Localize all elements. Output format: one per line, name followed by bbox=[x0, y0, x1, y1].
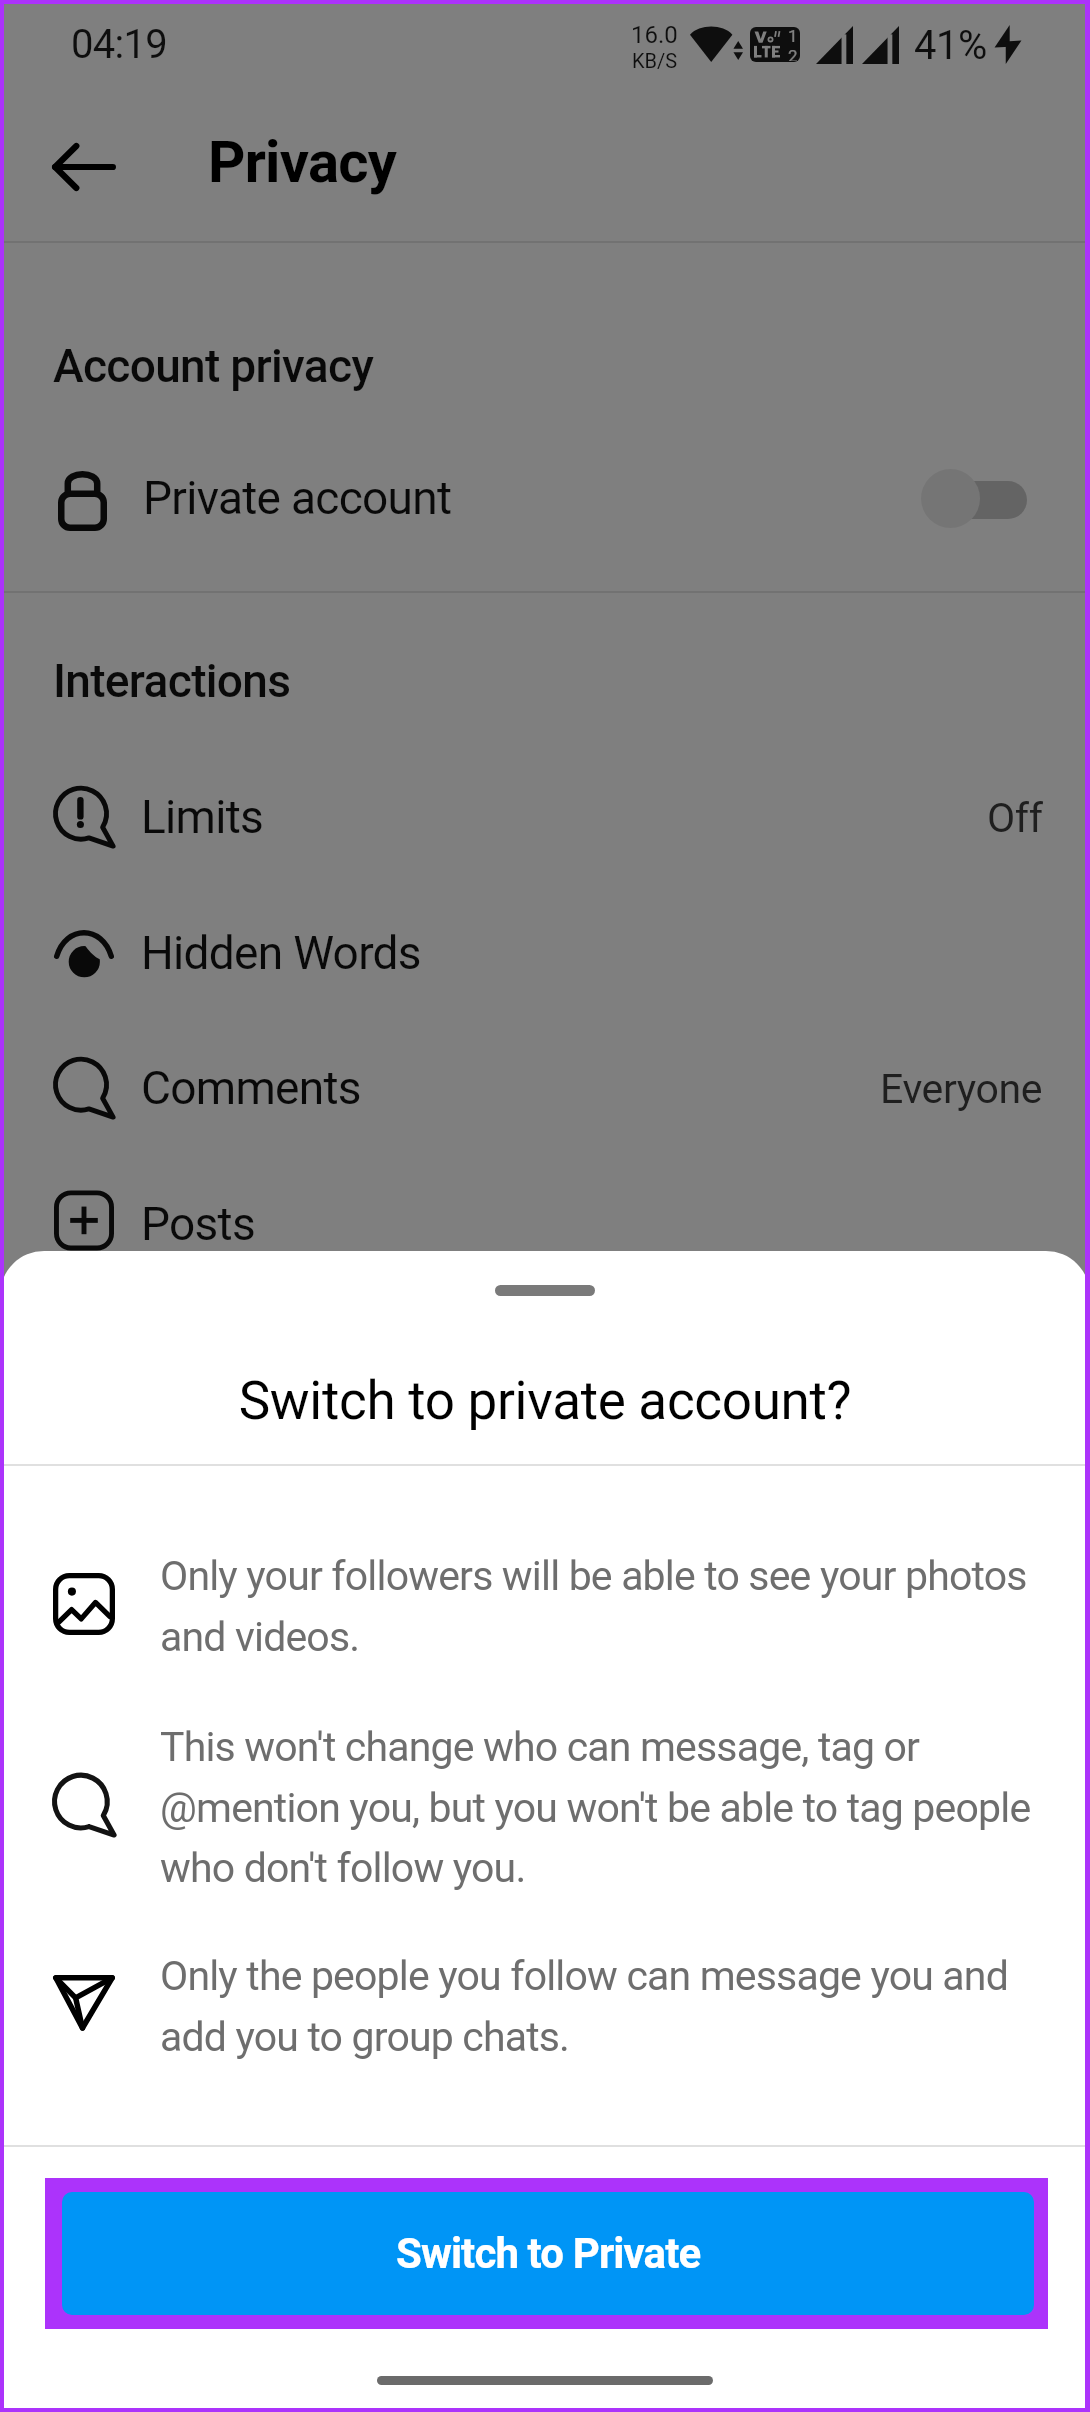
staticText: 16.0 bbox=[631, 21, 678, 49]
button[interactable]: Switch to Private bbox=[62, 2192, 1034, 2315]
staticText: Only the people you follow can message y… bbox=[160, 1952, 1008, 2061]
staticText: Comments bbox=[141, 1061, 361, 1115]
staticText: 2 bbox=[788, 46, 798, 61]
staticText: Posts bbox=[141, 1197, 255, 1251]
staticText: 1 bbox=[788, 27, 798, 46]
button[interactable]: Private account bbox=[0, 440, 1090, 562]
staticText: Interactions bbox=[53, 654, 291, 708]
staticText: 04:19 bbox=[71, 21, 168, 68]
staticText: Limits bbox=[141, 790, 264, 844]
staticText: Privacy bbox=[208, 128, 397, 196]
staticText: Hidden Words bbox=[141, 926, 421, 980]
staticText: Off bbox=[987, 794, 1043, 842]
staticText: Everyone bbox=[880, 1065, 1043, 1113]
button[interactable]: Hidden Words bbox=[0, 885, 1090, 1021]
button[interactable]: Private account toggle bbox=[921, 468, 1027, 528]
staticText: Account privacy bbox=[53, 339, 374, 393]
staticText: Switch to Private bbox=[396, 2229, 701, 2278]
staticText: Switch to private account? bbox=[0, 1370, 1090, 1432]
button[interactable]: Back bbox=[26, 109, 142, 225]
staticText: Private account bbox=[143, 471, 452, 525]
staticText: KB/S bbox=[632, 49, 678, 72]
staticText: 41% bbox=[914, 22, 987, 69]
staticText: This won't change who can message, tag o… bbox=[160, 1723, 1031, 1892]
button[interactable]: Limits bbox=[0, 749, 1090, 885]
staticText: Only your followers will be able to see … bbox=[160, 1552, 1027, 1661]
button[interactable]: Posts bbox=[0, 1156, 1090, 1292]
button[interactable]: Comments bbox=[0, 1020, 1090, 1156]
